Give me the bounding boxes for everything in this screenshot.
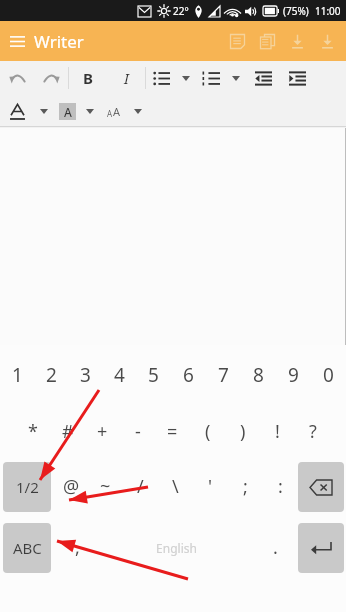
button[interactable]: Save: [284, 28, 310, 54]
staticText: (: [205, 419, 211, 444]
button[interactable]: Numbered list options: [226, 63, 246, 93]
button[interactable]: \: [158, 459, 193, 514]
button[interactable]: Bullet list options: [176, 63, 196, 93]
staticText: -: [135, 419, 141, 444]
button[interactable]: ,: [54, 520, 100, 575]
staticText: 22°: [173, 4, 189, 18]
button[interactable]: Highlight color: [54, 100, 80, 122]
button[interactable]: :: [263, 459, 298, 514]
staticText: A: [107, 108, 113, 119]
button[interactable]: +: [85, 413, 120, 449]
button[interactable]: Numbered list: [196, 63, 226, 93]
button[interactable]: ': [193, 459, 228, 514]
staticText: 6: [183, 362, 194, 388]
staticText: 9: [288, 362, 299, 388]
button[interactable]: 2: [34, 357, 68, 393]
button[interactable]: 1/2: [3, 462, 51, 512]
staticText: B: [83, 68, 93, 88]
staticText: 8: [253, 362, 264, 388]
staticText: ?: [309, 419, 317, 444]
button[interactable]: Font size: [100, 100, 128, 122]
staticText: ~: [100, 474, 111, 499]
button[interactable]: Increase indent: [280, 63, 314, 93]
staticText: ,: [75, 535, 80, 560]
button[interactable]: 3: [68, 357, 102, 393]
button[interactable]: Save as: [314, 28, 340, 54]
button[interactable]: I: [107, 63, 145, 93]
button[interactable]: B: [69, 63, 107, 93]
button[interactable]: Enter: [298, 523, 344, 573]
staticText: *: [28, 419, 38, 444]
button[interactable]: =: [155, 413, 190, 449]
button[interactable]: Edit: [224, 28, 250, 54]
staticText: 1/2: [16, 477, 39, 497]
button[interactable]: ~: [88, 459, 123, 514]
staticText: 7: [218, 362, 229, 388]
button[interactable]: @: [54, 459, 88, 514]
button[interactable]: #: [50, 413, 85, 449]
staticText: \: [172, 474, 179, 499]
staticText: /: [137, 474, 144, 499]
button[interactable]: (: [190, 413, 225, 449]
staticText: 0: [323, 362, 334, 388]
button[interactable]: 8: [241, 357, 276, 393]
staticText: =: [167, 419, 178, 444]
staticText: 2: [46, 362, 57, 388]
button[interactable]: Highlight color options: [80, 96, 100, 126]
staticText: ABC: [13, 538, 42, 558]
staticText: 5: [148, 362, 159, 388]
staticText: ): [240, 419, 246, 444]
button[interactable]: 4: [102, 357, 136, 393]
staticText: .: [273, 535, 278, 560]
staticText: 11:00: [315, 4, 341, 18]
staticText: 1: [12, 362, 23, 388]
button[interactable]: 7: [206, 357, 241, 393]
staticText: English: [156, 540, 197, 556]
button[interactable]: Backspace: [298, 462, 344, 512]
button[interactable]: Bullet list: [146, 63, 176, 93]
button[interactable]: 0: [311, 357, 346, 393]
button[interactable]: Font color options: [34, 96, 54, 126]
button[interactable]: Open navigation menu: [0, 24, 34, 58]
button[interactable]: 1: [0, 357, 34, 393]
button[interactable]: .: [252, 520, 298, 575]
staticText: A: [64, 104, 72, 120]
button[interactable]: 6: [171, 357, 206, 393]
button[interactable]: /: [123, 459, 158, 514]
button[interactable]: 5: [136, 357, 171, 393]
button[interactable]: Redo: [34, 63, 68, 93]
button[interactable]: Copy: [254, 28, 280, 54]
staticText: 4: [114, 362, 125, 388]
staticText: ': [208, 474, 213, 499]
button[interactable]: ): [225, 413, 260, 449]
button[interactable]: 9: [276, 357, 311, 393]
button[interactable]: ;: [228, 459, 263, 514]
button[interactable]: -: [120, 413, 155, 449]
button[interactable]: !: [260, 413, 295, 449]
staticText: #: [62, 419, 74, 444]
staticText: Writer: [34, 30, 84, 53]
button[interactable]: Font color: [0, 96, 34, 126]
staticText: I: [124, 68, 129, 88]
button[interactable]: English: [100, 520, 252, 575]
staticText: :: [278, 474, 283, 499]
staticText: +: [97, 419, 108, 444]
button[interactable]: ABC: [3, 523, 51, 573]
button[interactable]: Decrease indent: [246, 63, 280, 93]
staticText: (75%): [283, 4, 309, 18]
button[interactable]: Font size options: [128, 96, 148, 126]
button[interactable]: Undo: [0, 63, 34, 93]
button[interactable]: *: [16, 413, 50, 449]
staticText: !: [275, 419, 280, 444]
button[interactable]: ?: [295, 413, 330, 449]
staticText: 3: [80, 362, 91, 388]
staticText: ;: [243, 474, 248, 499]
staticText: A: [113, 104, 121, 119]
staticText: @: [63, 474, 80, 499]
